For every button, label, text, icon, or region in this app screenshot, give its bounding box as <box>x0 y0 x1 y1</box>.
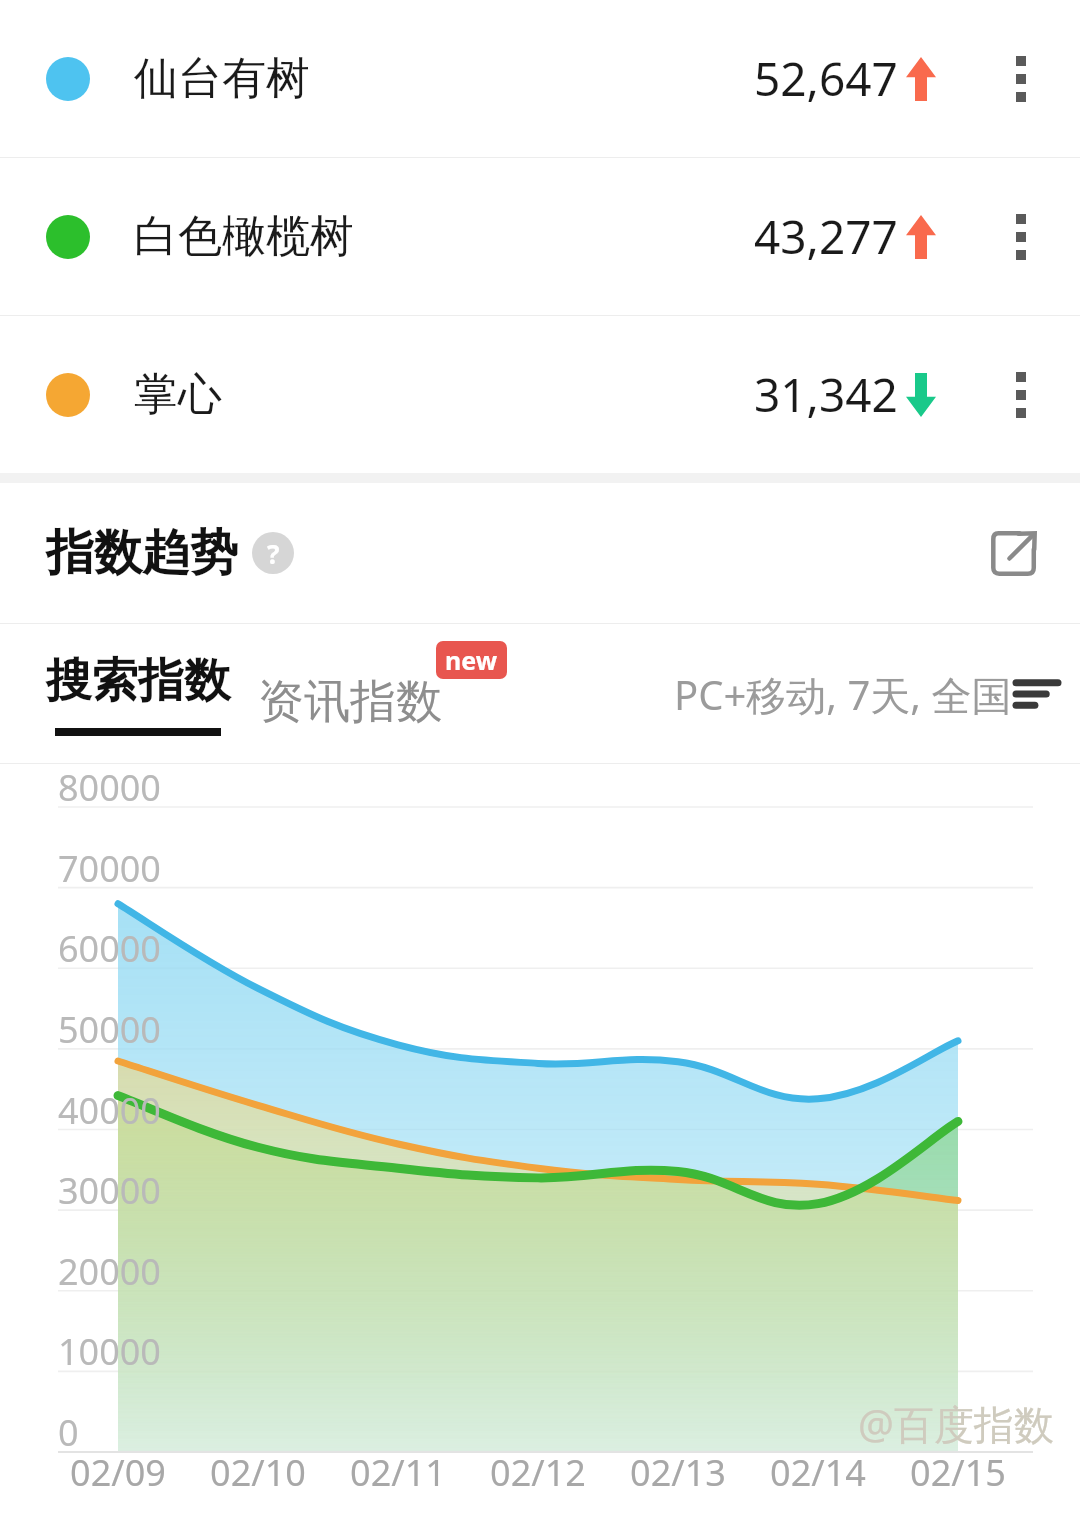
staticText: @百度指数 <box>858 1396 1054 1451</box>
staticText: 资讯指数 <box>258 673 442 731</box>
staticText: ? <box>267 536 280 571</box>
staticText: 02/12 <box>468 1448 608 1497</box>
button[interactable]: 仙台有树 <box>0 0 1080 157</box>
button[interactable]: PC+移动, 7天, 全国 <box>674 624 1058 764</box>
staticText: 52,647 <box>754 47 898 110</box>
staticText: 搜索指数 <box>46 652 230 710</box>
staticText: 02/11 <box>328 1448 468 1497</box>
staticText: 40000 <box>58 1086 161 1135</box>
button[interactable]: 资讯指数 <box>258 624 513 764</box>
staticText: 70000 <box>58 844 161 893</box>
staticText: 43,277 <box>754 205 898 268</box>
staticText: 掌心 <box>134 367 222 422</box>
staticText: 02/09 <box>48 1448 188 1497</box>
button[interactable]: 掌心 <box>0 316 1080 473</box>
button[interactable]: Help <box>252 532 294 574</box>
staticText: 02/14 <box>748 1448 888 1497</box>
staticText: 指数趋势 <box>46 523 238 583</box>
staticText: 20000 <box>58 1247 161 1296</box>
staticText: 02/13 <box>608 1448 748 1497</box>
button[interactable]: Open in new <box>974 513 1054 593</box>
staticText: 80000 <box>58 763 161 812</box>
staticText: 0 <box>58 1408 79 1457</box>
staticText: 30000 <box>58 1166 161 1215</box>
staticText: new <box>445 643 498 677</box>
button[interactable]: 白色橄榄树 <box>0 158 1080 315</box>
button[interactable]: More options <box>994 187 1048 287</box>
staticText: 50000 <box>58 1005 161 1054</box>
staticText: 02/15 <box>888 1448 1028 1497</box>
button[interactable]: 搜索指数 <box>46 624 230 764</box>
staticText: 白色橄榄树 <box>134 209 354 264</box>
staticText: 02/10 <box>188 1448 328 1497</box>
staticText: PC+移动, 7天, 全国 <box>674 667 1012 722</box>
button[interactable]: More options <box>994 345 1048 445</box>
staticText: 10000 <box>58 1327 161 1376</box>
staticText: 31,342 <box>754 363 898 426</box>
staticText: 60000 <box>58 924 161 973</box>
button[interactable]: More options <box>994 29 1048 129</box>
staticText: 仙台有树 <box>134 51 310 106</box>
